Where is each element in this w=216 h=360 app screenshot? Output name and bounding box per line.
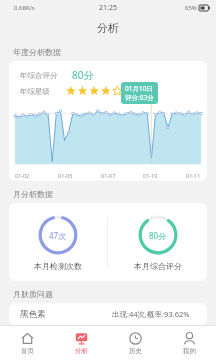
staticText: 我的 [183, 347, 196, 355]
staticText: 0.68K/s [14, 4, 35, 12]
staticText: 01-02 [15, 172, 30, 179]
button[interactable]: 历史 [108, 326, 162, 360]
staticText: 01-07 [101, 172, 116, 179]
staticText: 01-11 [186, 172, 201, 179]
staticText: 黑色素 [20, 309, 46, 320]
staticText: 分析 [97, 21, 119, 35]
staticText: 本月综合评分 [134, 261, 182, 271]
staticText: 01-10 [143, 172, 158, 179]
staticText: 本月检测次数 [34, 261, 82, 271]
button[interactable]: 首页 [0, 326, 54, 360]
staticText: 年度分析数据 [13, 47, 61, 57]
staticText: 首页 [21, 347, 34, 355]
button[interactable]: 80分 [108, 203, 207, 281]
staticText: 年综星级 [20, 87, 50, 96]
button[interactable]: 分析 [54, 326, 108, 360]
staticText: 80分 [72, 68, 94, 82]
button[interactable]: 我的 [162, 326, 216, 360]
staticText: 65% [185, 4, 197, 12]
button[interactable]: 年综合评分 [9, 61, 207, 181]
staticText: 01月10日 [125, 84, 153, 93]
staticText: 出现:44次,概率:93.62% [112, 309, 190, 319]
button[interactable]: 黑色素 [9, 303, 207, 325]
staticText: 评分:83分 [125, 93, 154, 102]
staticText: 年综合评分 [20, 71, 58, 80]
staticText: 47次 [49, 230, 67, 241]
staticText: 月肤质问题 [13, 289, 53, 299]
staticText: 分析 [75, 347, 88, 355]
staticText: 历史 [129, 347, 142, 355]
staticText: 21:25 [99, 3, 117, 13]
staticText: 01-05 [58, 172, 73, 179]
staticText: 80分 [149, 230, 167, 241]
staticText: 月分析数据 [13, 189, 53, 199]
button[interactable]: 47次 [9, 203, 107, 281]
